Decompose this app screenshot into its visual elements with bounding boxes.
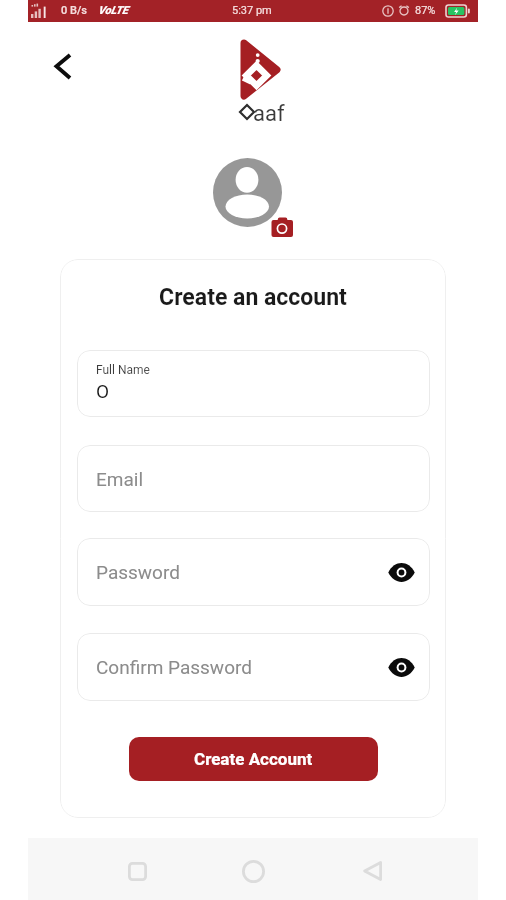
staticText: 87% [415, 4, 436, 17]
button[interactable]: Back [351, 849, 395, 893]
staticText: Password [96, 561, 180, 583]
staticText: Create Account [194, 749, 313, 769]
button[interactable]: Back [42, 45, 84, 87]
button[interactable]: Change photo [271, 217, 293, 238]
staticText: O [96, 380, 110, 402]
button[interactable]: Create Account [129, 737, 378, 781]
staticText: 0 B/s [61, 4, 87, 17]
staticText: Email [96, 468, 144, 490]
button[interactable]: Full Name [77, 350, 430, 417]
staticText: aaf [253, 101, 285, 127]
button[interactable]: Confirm Password [77, 633, 430, 701]
staticText: VoLTE [98, 4, 129, 17]
button[interactable]: Profile photo [213, 158, 282, 227]
button[interactable]: Password [77, 538, 430, 606]
button[interactable]: Recents [115, 849, 159, 893]
button[interactable]: Show password [386, 652, 416, 682]
staticText: 5:37 pm [232, 4, 272, 17]
button[interactable]: Email [77, 445, 430, 512]
staticText: Full Name [96, 363, 150, 377]
button[interactable]: Show password [386, 557, 416, 587]
staticText: Create an account [60, 284, 446, 311]
staticText: Confirm Password [96, 656, 252, 678]
button[interactable]: Home [231, 849, 275, 893]
